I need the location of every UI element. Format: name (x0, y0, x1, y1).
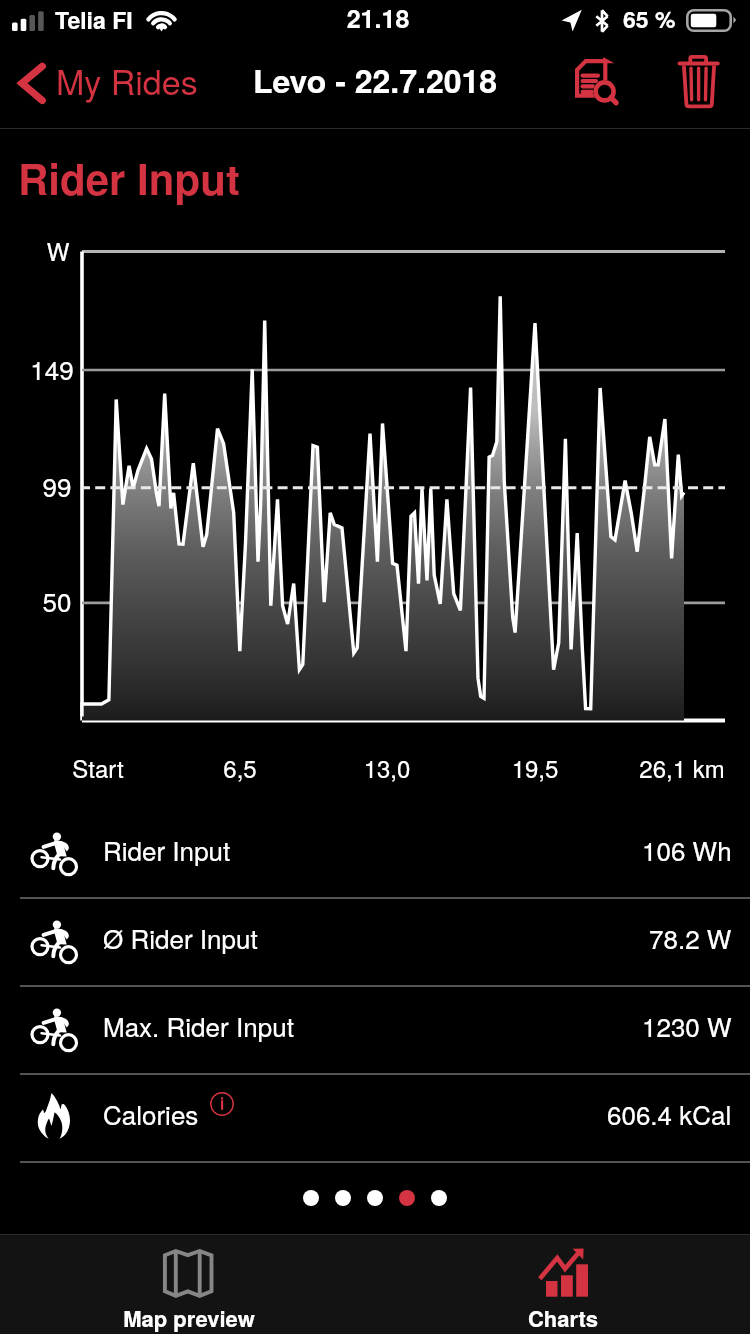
staticText: W (0, 233, 268, 267)
staticText: 6,5 (30, 750, 450, 784)
button[interactable]: Ride details (554, 48, 640, 128)
staticText: Telia FI (55, 3, 133, 36)
button[interactable]: Rider Input (0, 811, 750, 897)
staticText: Start (0, 750, 308, 784)
staticText: 65 % (623, 2, 676, 35)
staticText: Levo - 22.7.2018 (165, 57, 585, 103)
button[interactable]: Charts (375, 1235, 750, 1334)
staticText: 78.2 W (649, 919, 732, 956)
staticText: Charts (463, 1302, 663, 1334)
staticText: My Rides (56, 56, 198, 105)
staticText: 149 (0, 350, 262, 387)
staticText: 13,0 (177, 750, 597, 784)
staticText: 106 Wh (642, 831, 732, 868)
staticText: 21.18 (168, 0, 588, 36)
button[interactable]: Map preview (0, 1235, 375, 1334)
staticText: 1230 W (642, 1007, 732, 1044)
staticText: Ø Rider Input (103, 919, 258, 956)
staticText: 606.4 kCal (607, 1095, 732, 1132)
staticText: 50 (0, 582, 267, 619)
staticText: 26,1 km (472, 750, 750, 784)
button[interactable]: Max. Rider Input (0, 987, 750, 1073)
button[interactable]: My Rides (8, 52, 208, 124)
button[interactable]: Ø Rider Input (0, 899, 750, 985)
staticText: Rider Input (103, 831, 231, 868)
button[interactable]: Calories (0, 1075, 750, 1161)
staticText: Rider Input (18, 148, 240, 208)
staticText: Map preview (89, 1302, 289, 1334)
staticText: Calories (103, 1095, 199, 1132)
button[interactable]: Delete ride (654, 48, 740, 128)
staticText: Max. Rider Input (103, 1007, 294, 1044)
staticText: 99 (0, 467, 267, 504)
staticText: 19,5 (325, 750, 745, 784)
